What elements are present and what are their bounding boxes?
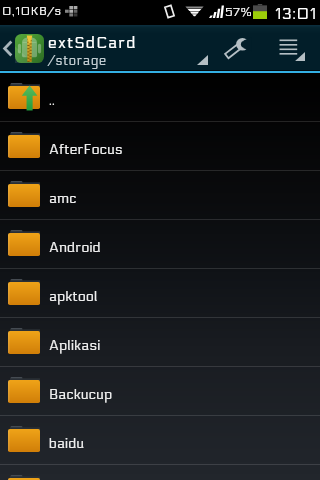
button[interactable]: amc bbox=[0, 171, 320, 219]
button[interactable]: Aplikasi bbox=[0, 318, 320, 366]
button[interactable]: Up bbox=[0, 25, 15, 70]
staticText: .. bbox=[49, 92, 56, 109]
staticText: Android bbox=[49, 239, 101, 256]
button[interactable]: bluetooth bbox=[0, 465, 320, 480]
staticText: extSdCard bbox=[48, 33, 137, 52]
staticText: 57% bbox=[225, 5, 252, 19]
button[interactable]: .. bbox=[0, 73, 320, 121]
staticText: baidu bbox=[49, 435, 85, 452]
staticText: amc bbox=[49, 190, 77, 207]
button[interactable]: Tools bbox=[210, 25, 262, 70]
button[interactable]: Android bbox=[0, 220, 320, 268]
staticText: Aplikasi bbox=[49, 337, 101, 354]
button[interactable]: Backucup bbox=[0, 367, 320, 415]
staticText: AfterFocus bbox=[49, 141, 123, 158]
staticText: Backucup bbox=[49, 386, 113, 403]
staticText: /storage bbox=[48, 53, 107, 68]
button[interactable]: Menu bbox=[265, 25, 317, 70]
button[interactable]: AfterFocus bbox=[0, 122, 320, 170]
staticText: 13:01 bbox=[275, 4, 317, 23]
button[interactable]: extSdCard bbox=[15, 25, 190, 70]
button[interactable]: apktool bbox=[0, 269, 320, 317]
button[interactable]: baidu bbox=[0, 416, 320, 464]
staticText: 0,10KB/s bbox=[2, 4, 62, 18]
staticText: apktool bbox=[49, 288, 98, 305]
